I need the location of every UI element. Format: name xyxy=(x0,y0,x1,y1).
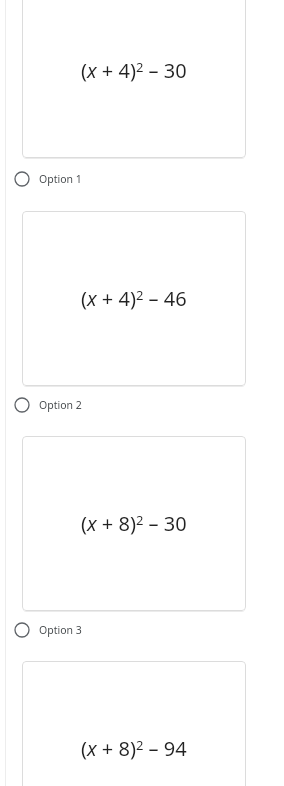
staticText: Option 2 xyxy=(39,398,82,412)
staticText: (x + 4)2 – 30 xyxy=(81,57,187,84)
staticText: (x + 4)2 – 46 xyxy=(81,285,187,312)
other: Option 1 xyxy=(14,171,30,187)
button[interactable]: (x + 8)2 – 30 xyxy=(22,436,246,611)
other: Option 2 xyxy=(14,397,30,413)
other: Option 3 xyxy=(14,622,30,638)
button[interactable]: (x + 8)2 – 94 xyxy=(22,661,246,786)
staticText: Option 1 xyxy=(39,172,82,186)
button[interactable]: Option 2 xyxy=(14,392,164,418)
button[interactable]: (x + 4)2 – 30 xyxy=(22,0,246,158)
staticText: (x + 8)2 – 30 xyxy=(81,510,187,537)
button[interactable]: Option 3 xyxy=(14,617,164,643)
staticText: Option 3 xyxy=(39,623,82,637)
staticText: (x + 8)2 – 94 xyxy=(81,735,187,762)
button[interactable]: Option 1 xyxy=(14,166,164,192)
button[interactable]: (x + 4)2 – 46 xyxy=(22,211,246,386)
